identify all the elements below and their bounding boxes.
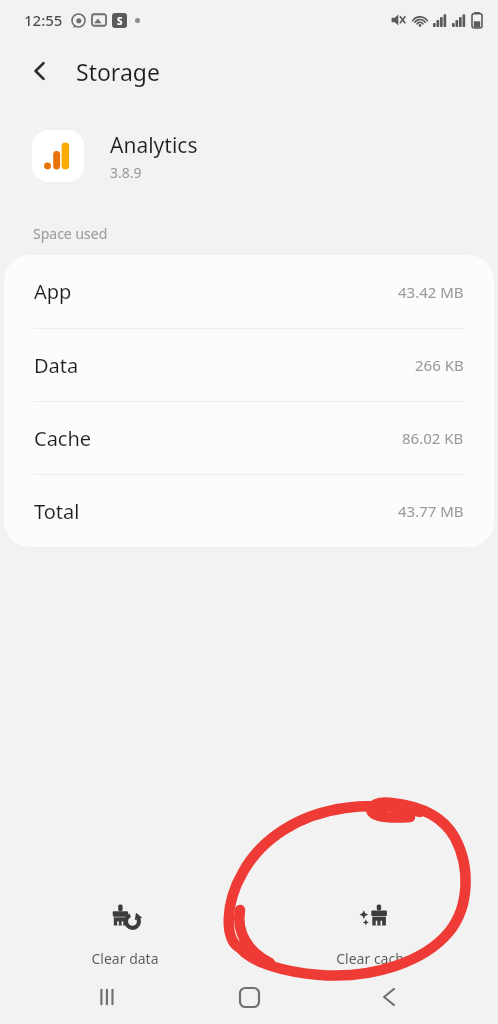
button[interactable]: Recent apps (78, 970, 140, 1024)
staticText: Cache (34, 425, 92, 452)
button[interactable]: App (4, 255, 494, 328)
staticText: Storage (76, 56, 160, 87)
staticText: Total (34, 498, 80, 525)
button[interactable]: Total (4, 475, 494, 547)
button[interactable]: Back (16, 47, 64, 95)
staticText: 266 KB (415, 355, 464, 375)
staticText: Analytics (110, 131, 198, 160)
staticText: Space used (33, 224, 108, 243)
staticText: App (34, 278, 72, 305)
staticText: 86.02 KB (402, 428, 464, 448)
button[interactable]: Clear cache (249, 893, 498, 976)
button[interactable]: Back (358, 970, 420, 1024)
staticText: S (117, 14, 123, 28)
staticText: 12:55 (24, 10, 63, 30)
button[interactable]: Home (218, 970, 280, 1024)
staticText: 3.8.9 (110, 163, 142, 182)
staticText: 43.77 MB (398, 501, 464, 521)
staticText: Clear cache (336, 949, 412, 968)
staticText: 43.42 MB (398, 282, 464, 302)
staticText: Clear data (91, 949, 159, 968)
button[interactable]: Cache (4, 402, 494, 474)
button[interactable]: Clear data (0, 893, 249, 976)
button[interactable]: Data (4, 329, 494, 401)
staticText: Data (34, 352, 79, 379)
